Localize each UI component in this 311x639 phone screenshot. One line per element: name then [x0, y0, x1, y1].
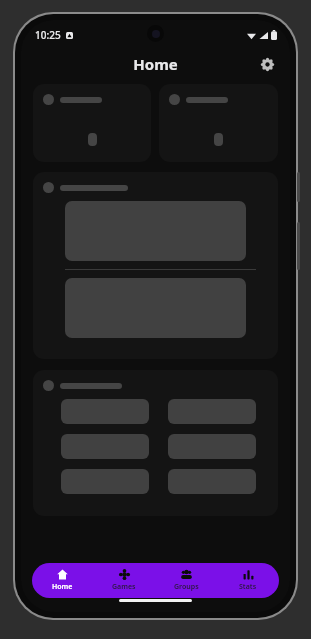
staticText: Home	[52, 582, 73, 592]
button[interactable]: Stats	[217, 563, 279, 598]
button[interactable]: Home	[32, 563, 93, 598]
button[interactable]	[33, 370, 278, 516]
staticText: 10:25	[35, 28, 61, 42]
button[interactable]	[61, 434, 149, 459]
button[interactable]	[33, 84, 151, 162]
button[interactable]	[159, 84, 278, 162]
button[interactable]	[168, 434, 256, 459]
button[interactable]	[168, 399, 256, 424]
button[interactable]: Groups	[155, 563, 217, 598]
button[interactable]: Games	[93, 563, 155, 598]
staticText: Stats	[239, 582, 257, 592]
staticText: Home	[133, 54, 178, 74]
staticText: Groups	[174, 582, 199, 592]
button[interactable]	[168, 469, 256, 494]
button[interactable]: Settings	[254, 51, 280, 77]
button[interactable]	[61, 399, 149, 424]
button[interactable]	[61, 469, 149, 494]
button[interactable]	[33, 172, 278, 359]
staticText: Games	[112, 582, 136, 592]
